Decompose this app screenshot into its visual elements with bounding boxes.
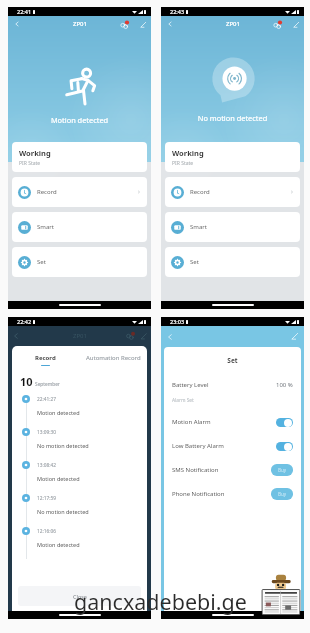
staticText: Automation Record (86, 354, 141, 362)
staticText: Working (19, 148, 51, 158)
staticText: 23:03 (170, 318, 185, 325)
button[interactable]: Back (165, 19, 175, 29)
button[interactable]: Back (164, 331, 175, 342)
staticText: SMS Notification (172, 466, 219, 474)
button[interactable]: Smart (12, 212, 147, 242)
button[interactable]: Motion Alarm (164, 410, 301, 434)
staticText: Battery Level (172, 381, 209, 389)
staticText: 10 (20, 374, 33, 389)
staticText: Smart (190, 223, 207, 231)
button[interactable]: Share (119, 19, 130, 30)
button[interactable]: Back (12, 19, 22, 29)
staticText: Set (190, 258, 199, 266)
button[interactable]: Record (12, 177, 147, 207)
staticText: Record (37, 188, 57, 196)
staticText: 22:41 (17, 8, 32, 15)
staticText: Record (35, 354, 56, 362)
staticText: Record (190, 188, 210, 196)
staticText: No motion detected (161, 113, 304, 123)
staticText: Working (172, 148, 204, 158)
staticText: 13:08:42 (37, 462, 57, 469)
button[interactable]: Smart (165, 212, 300, 242)
staticText: Phone Notification (172, 490, 225, 498)
staticText: Low Battery Alarm (172, 442, 224, 450)
button[interactable]: Edit (138, 20, 148, 30)
staticText: Motion detected (37, 541, 80, 548)
staticText: Buy (278, 491, 287, 497)
staticText: Motion detected (37, 475, 80, 482)
button[interactable]: Working (165, 142, 300, 172)
staticText: 100 % (276, 381, 293, 389)
staticText: 22:42 (17, 318, 32, 325)
button[interactable]: Record (12, 354, 79, 366)
staticText: Alarm Set (172, 397, 194, 404)
staticText: 13:09:30 (37, 429, 57, 436)
button[interactable]: Automation Record (79, 354, 147, 362)
button[interactable]: Share (272, 19, 283, 30)
staticText: 22:41:27 (37, 396, 57, 403)
staticText: Motion detected (8, 115, 151, 125)
staticText: No motion detected (37, 442, 89, 449)
staticText: Buy (278, 467, 287, 473)
staticText: PIR State (172, 160, 194, 167)
staticText: ZP01 (73, 20, 87, 28)
staticText: 12:16:06 (37, 528, 57, 535)
staticText: Close (73, 593, 87, 600)
button[interactable]: Close (18, 586, 141, 606)
staticText: ZP01 (226, 20, 240, 28)
staticText: gancxadebebi.ge (74, 587, 247, 616)
button[interactable]: Set (12, 247, 147, 277)
staticText: PIR State (19, 160, 41, 167)
staticText: ZP01 (73, 332, 87, 340)
button[interactable]: Set (165, 247, 300, 277)
staticText: Set (164, 356, 301, 365)
button[interactable]: Working (12, 142, 147, 172)
staticText: Set (37, 258, 46, 266)
button[interactable]: SMS Notification (164, 458, 301, 482)
staticText: 22:43 (170, 8, 185, 15)
button[interactable]: Low Battery Alarm (164, 434, 301, 458)
staticText: Smart (37, 223, 54, 231)
button[interactable]: Record (165, 177, 300, 207)
staticText: September (35, 381, 60, 388)
staticText: Motion detected (37, 409, 80, 416)
staticText: Motion Alarm (172, 418, 211, 426)
button[interactable]: Phone Notification (164, 482, 301, 506)
staticText: 12:17:59 (37, 495, 57, 502)
button[interactable]: Edit (291, 20, 301, 30)
button[interactable]: Edit (289, 331, 300, 342)
staticText: No motion detected (37, 508, 89, 515)
